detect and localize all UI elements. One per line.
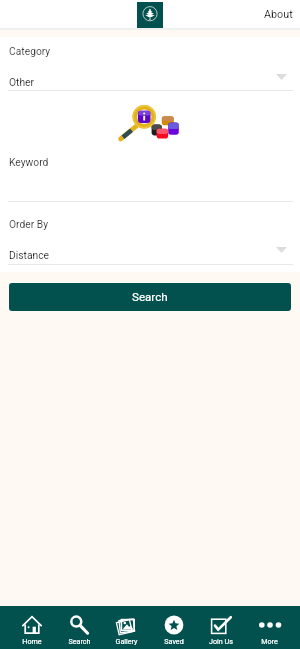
staticText: Category [9,45,51,57]
staticText: Distance [9,249,50,261]
staticText: Other [9,76,35,88]
button[interactable]: Order By [0,215,300,233]
button[interactable]: Saved [150,606,198,649]
button[interactable]: Home logo [137,2,163,28]
button[interactable]: Join Us [197,606,245,649]
button[interactable]: About [254,4,300,25]
button[interactable]: Gallery [102,606,150,649]
button[interactable]: Search [55,606,103,649]
button[interactable]: Home [8,606,56,649]
staticText: Order By [9,218,49,230]
staticText: Saved [164,637,184,645]
button[interactable]: Other [0,73,300,90]
staticText: Search [68,637,91,645]
staticText: Home [22,637,42,645]
staticText: More [261,637,278,645]
button[interactable]: Search [9,283,291,311]
staticText: Join Us [209,637,233,645]
staticText: Keyword [9,156,49,168]
button[interactable]: More [245,606,293,649]
staticText: About [264,8,293,21]
button[interactable]: Category [0,42,300,60]
button[interactable]: Keyword [0,153,300,171]
staticText: Search [132,290,168,304]
button[interactable]: Distance [0,246,300,263]
staticText: Gallery [115,637,138,645]
